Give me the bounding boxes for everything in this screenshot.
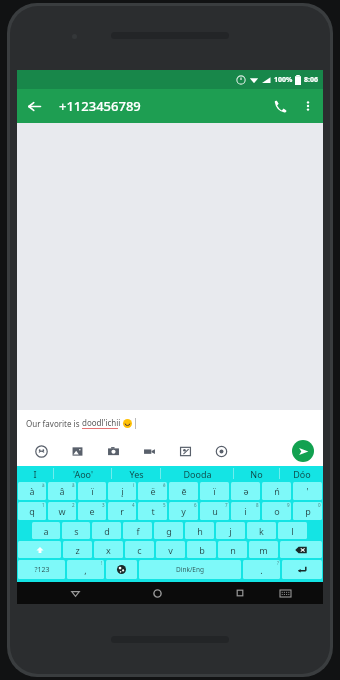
staticText: ï (213, 485, 216, 497)
button[interactable]: x (94, 541, 123, 558)
button[interactable]: f (123, 522, 152, 539)
button[interactable]: a (32, 522, 60, 539)
button[interactable]: ï (200, 482, 229, 500)
staticText: ! (101, 560, 103, 566)
staticText: I (33, 468, 37, 480)
button[interactable]: Video (131, 437, 167, 465)
staticText: į (121, 485, 124, 497)
button[interactable]: ə (231, 482, 260, 500)
staticText: b (199, 544, 205, 556)
button[interactable]: z (63, 541, 92, 558)
staticText: 8 (256, 502, 259, 508)
button[interactable]: 0 (293, 502, 322, 520)
staticText: t (151, 505, 155, 517)
staticText: i (244, 505, 247, 517)
button[interactable]: Enter (282, 560, 322, 579)
button[interactable]: 'Aoo' (54, 466, 111, 481)
button[interactable]: ã (48, 482, 76, 500)
button[interactable]: ê (138, 482, 167, 500)
button[interactable]: c (125, 541, 154, 558)
staticText: n (230, 544, 236, 556)
button[interactable]: ? (243, 560, 280, 579)
button[interactable]: ï (78, 482, 106, 500)
staticText: Dóo (293, 468, 311, 480)
button[interactable]: k (247, 522, 276, 539)
button[interactable]: d (92, 522, 121, 539)
button[interactable]: ń (262, 482, 291, 500)
button[interactable]: Home (139, 582, 176, 604)
staticText: , (84, 564, 87, 576)
button[interactable]: Dóo (280, 466, 323, 481)
staticText: doodl'ichii (82, 417, 121, 428)
button[interactable]: Language (106, 560, 137, 579)
staticText: Dooda (183, 468, 212, 480)
staticText: 2 (72, 502, 75, 508)
staticText: ä (42, 482, 45, 488)
staticText: ë (150, 485, 156, 497)
button[interactable]: 7 (200, 502, 229, 520)
staticText: f (136, 525, 140, 537)
button[interactable]: 8 (231, 502, 260, 520)
button[interactable]: v (156, 541, 185, 558)
button[interactable]: ' (293, 482, 322, 500)
button[interactable]: ! (67, 560, 104, 579)
staticText: s (74, 525, 79, 537)
button[interactable]: Gallery (59, 437, 95, 465)
staticText: o (274, 505, 280, 517)
button[interactable]: 1 (18, 502, 46, 520)
button[interactable]: 2 (48, 502, 76, 520)
button[interactable]: More options (295, 93, 321, 119)
button[interactable]: ì (108, 482, 136, 500)
button[interactable]: Emoji (23, 437, 59, 465)
button[interactable]: 9 (262, 502, 291, 520)
button[interactable]: Dink/Eng (139, 560, 241, 579)
button[interactable]: Call (265, 91, 295, 121)
button[interactable]: I (17, 466, 53, 481)
button[interactable]: m (249, 541, 278, 558)
button[interactable]: No (234, 466, 279, 481)
button[interactable]: Sticker (167, 437, 203, 465)
staticText: ' (306, 485, 309, 497)
button[interactable]: Back (17, 89, 51, 123)
button[interactable]: Camera (95, 437, 131, 465)
button[interactable]: Send (292, 440, 314, 462)
staticText: p (305, 505, 311, 517)
button[interactable]: Audio (203, 437, 239, 465)
staticText: w (58, 505, 66, 517)
button[interactable]: g (154, 522, 183, 539)
button[interactable]: 5 (138, 502, 167, 520)
button[interactable]: 3 (78, 502, 106, 520)
button[interactable]: Hide keyboard (267, 582, 304, 604)
button[interactable]: Dooda (161, 466, 233, 481)
button[interactable]: s (62, 522, 90, 539)
staticText: a (43, 525, 49, 537)
button[interactable]: ?123 (18, 560, 65, 579)
button[interactable]: l (278, 522, 307, 539)
button[interactable]: Shift (18, 541, 61, 558)
button[interactable]: ē (169, 482, 198, 500)
staticText: â (59, 485, 65, 497)
button[interactable]: h (185, 522, 214, 539)
button[interactable]: b (187, 541, 216, 558)
staticText: ?123 (34, 565, 50, 575)
staticText: j (229, 525, 232, 537)
staticText: 0 (318, 502, 321, 508)
button[interactable]: ä (18, 482, 46, 500)
staticText: e (89, 505, 95, 517)
button[interactable]: Backspace (280, 541, 322, 558)
button[interactable]: Recents (221, 582, 258, 604)
button[interactable]: Back (57, 582, 94, 604)
staticText: y (181, 505, 186, 517)
staticText: ə (243, 485, 249, 497)
staticText: 5 (163, 502, 166, 508)
button[interactable]: n (218, 541, 247, 558)
staticText: ń (274, 485, 280, 497)
button[interactable]: 4 (108, 502, 136, 520)
staticText: d (104, 525, 110, 537)
staticText: r (120, 505, 124, 517)
staticText: h (197, 525, 203, 537)
button[interactable]: 6 (169, 502, 198, 520)
staticText: k (259, 525, 264, 537)
button[interactable]: j (216, 522, 245, 539)
button[interactable]: Yes (112, 466, 160, 481)
